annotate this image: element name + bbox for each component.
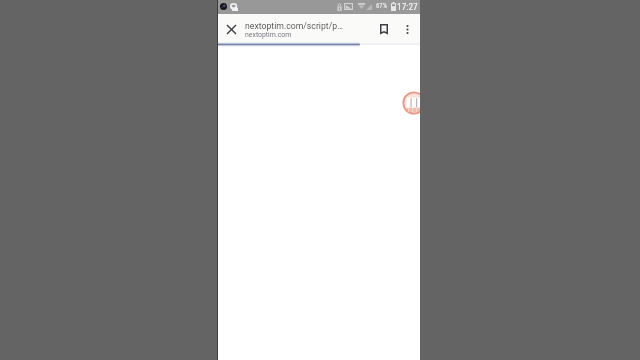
- button[interactable]: nextoptim.com/script/p…: [242, 14, 368, 44]
- staticText: 17:27: [397, 1, 418, 12]
- button[interactable]: Close: [221, 14, 242, 44]
- staticText: 67%: [376, 2, 388, 10]
- staticText: nextoptim.com/script/p…: [245, 21, 343, 31]
- button[interactable]: More options: [398, 14, 417, 44]
- button[interactable]: Bookmark: [374, 14, 394, 44]
- staticText: nextoptim.com: [245, 31, 292, 39]
